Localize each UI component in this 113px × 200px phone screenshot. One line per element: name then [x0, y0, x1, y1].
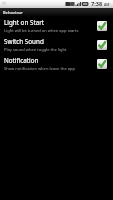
staticText: 7:38: [91, 0, 103, 8]
staticText: Light will be turned on when app starts: [4, 28, 79, 34]
button[interactable]: Toggle setting: [96, 20, 107, 31]
button[interactable]: Notification: [0, 54, 113, 73]
staticText: Behaviour: [3, 10, 23, 15]
staticText: Notification: [4, 56, 39, 65]
button[interactable]: Toggle setting: [96, 58, 107, 69]
button[interactable]: Switch Sound: [0, 35, 113, 54]
button[interactable]: Light on Start: [0, 16, 113, 35]
staticText: AM: [104, 2, 110, 7]
staticText: Light on Start: [4, 18, 45, 27]
staticText: Play sound when toggle the light: [4, 47, 67, 53]
staticText: Show notification when leave the app: [4, 66, 75, 72]
button[interactable]: Toggle setting: [96, 39, 107, 50]
staticText: Switch Sound: [4, 37, 44, 46]
